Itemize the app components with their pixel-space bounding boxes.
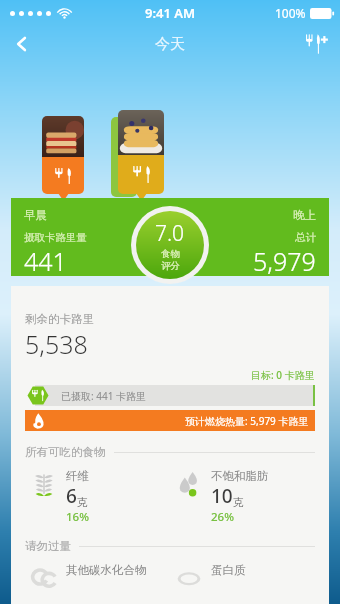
- staticText: 摄取卡路里量: [24, 231, 87, 244]
- staticText: 5,979: [253, 244, 316, 278]
- button[interactable]: Back: [0, 26, 44, 62]
- staticText: 441: [24, 244, 67, 278]
- staticText: 总计: [295, 231, 316, 244]
- staticText: 晚上: [293, 208, 316, 222]
- staticText: 已摄取: 441 卡路里: [61, 389, 147, 403]
- staticText: 10: [211, 483, 233, 509]
- button[interactable]: Add food: [292, 26, 340, 62]
- staticText: 16%: [66, 509, 89, 525]
- staticText: 纤维: [66, 469, 89, 483]
- staticText: 不饱和脂肪: [211, 469, 269, 483]
- staticText: 5,538: [25, 327, 88, 361]
- button[interactable]: 蛋白质: [170, 563, 315, 593]
- staticText: 评分: [161, 260, 180, 272]
- button[interactable]: 不饱和脂肪: [170, 469, 315, 525]
- button[interactable]: Sandwich meal: [42, 116, 84, 194]
- staticText: 100%: [275, 5, 306, 21]
- staticText: 早晨: [24, 208, 47, 222]
- staticText: 剩余的卡路里: [25, 312, 94, 326]
- button[interactable]: 7.0: [131, 206, 209, 284]
- staticText: 今天: [155, 35, 185, 54]
- staticText: 26%: [211, 509, 234, 525]
- staticText: 6: [66, 483, 77, 509]
- staticText: 9:41 AM: [145, 4, 196, 22]
- staticText: 克: [77, 496, 88, 509]
- staticText: 食物: [161, 248, 180, 260]
- staticText: 7.0: [155, 219, 185, 248]
- staticText: 其他碳水化合物: [66, 563, 147, 577]
- button[interactable]: Salad entry: [111, 117, 137, 197]
- button[interactable]: 其他碳水化合物: [25, 563, 170, 593]
- button[interactable]: 纤维: [25, 469, 170, 525]
- staticText: 所有可吃的食物: [25, 445, 106, 459]
- staticText: 克: [233, 496, 244, 509]
- staticText: 请勿过量: [25, 539, 71, 553]
- button[interactable]: Pancakes meal: [118, 110, 164, 194]
- staticText: 预计燃烧热量: 5,979 卡路里: [185, 414, 309, 428]
- staticText: 蛋白质: [211, 563, 246, 577]
- staticText: 目标: 0 卡路里: [251, 368, 315, 382]
